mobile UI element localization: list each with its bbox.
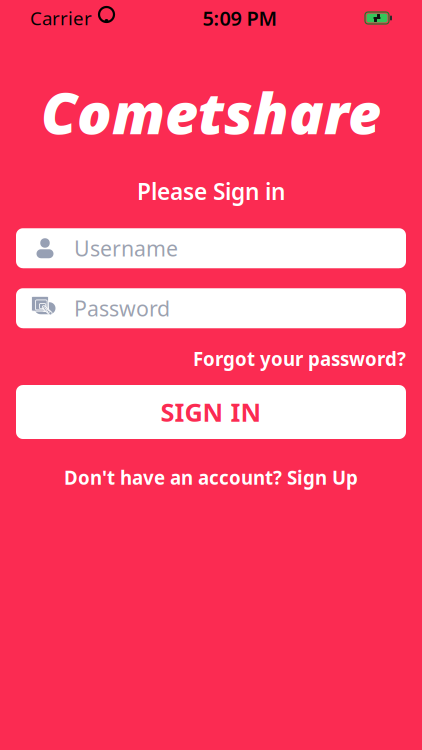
button[interactable]: Username — [16, 228, 406, 268]
staticText: SIGN IN — [160, 395, 261, 429]
button[interactable]: Don't have an account? Sign Up — [64, 465, 358, 490]
staticText: 5:09 PM — [202, 5, 277, 31]
staticText: Forgot your password? — [193, 346, 406, 371]
staticText: Cometshare — [41, 74, 381, 150]
staticText: Username — [74, 234, 178, 262]
staticText: Carrier — [30, 6, 92, 30]
staticText: Don't have an account? Sign Up — [64, 465, 358, 490]
button[interactable]: Password — [16, 288, 406, 328]
staticText: Password — [74, 294, 170, 322]
button[interactable]: Forgot your password? — [193, 346, 406, 371]
button[interactable]: SIGN IN — [16, 385, 406, 439]
staticText: Please Sign in — [137, 176, 285, 206]
